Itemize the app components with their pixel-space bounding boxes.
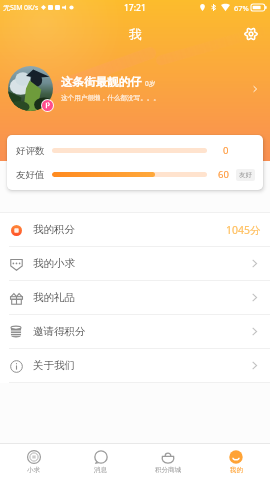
button[interactable]: 我的积分 <box>0 213 270 246</box>
button[interactable]: 我的礼品 <box>0 281 270 314</box>
staticText: 友好值 <box>16 169 45 181</box>
staticText: 好评数 <box>16 145 45 157</box>
button[interactable]: 我的 <box>202 444 270 480</box>
staticText: 1045分 <box>226 223 261 237</box>
button[interactable]: 关于我们 <box>0 349 270 382</box>
staticText: 无SIM <box>3 3 23 13</box>
staticText: 这个用户很懒，什么都没写。。。 <box>61 94 160 102</box>
staticText: 小求 <box>27 466 40 474</box>
staticText: 我的小求 <box>33 257 75 270</box>
staticText: 消息 <box>94 466 107 474</box>
staticText: 0K/s <box>24 3 39 13</box>
button[interactable]: 这条街最靓的仔 <box>0 52 270 125</box>
button[interactable]: 友好 <box>236 169 255 181</box>
button[interactable]: 小求 <box>0 444 67 480</box>
button[interactable]: 消息 <box>67 444 134 480</box>
staticText: 我 <box>129 26 142 42</box>
staticText: 60 <box>218 168 229 181</box>
button[interactable]: Settings <box>240 23 262 45</box>
staticText: 0岁 <box>145 79 156 88</box>
staticText: 我的 <box>230 466 243 474</box>
staticText: 17:21 <box>124 2 146 14</box>
staticText: 我的礼品 <box>33 291 75 304</box>
staticText: 67% <box>234 3 249 13</box>
staticText: 邀请得积分 <box>33 325 86 338</box>
button[interactable]: 邀请得积分 <box>0 315 270 348</box>
staticText: 友好 <box>239 171 252 179</box>
staticText: 我的积分 <box>33 223 75 236</box>
staticText: 0 <box>223 144 229 157</box>
staticText: 积分商城 <box>155 466 181 474</box>
button[interactable]: 我的小求 <box>0 247 270 280</box>
button[interactable]: 积分商城 <box>134 444 202 480</box>
staticText: 这条街最靓的仔 <box>61 75 142 89</box>
staticText: 关于我们 <box>33 359 75 372</box>
